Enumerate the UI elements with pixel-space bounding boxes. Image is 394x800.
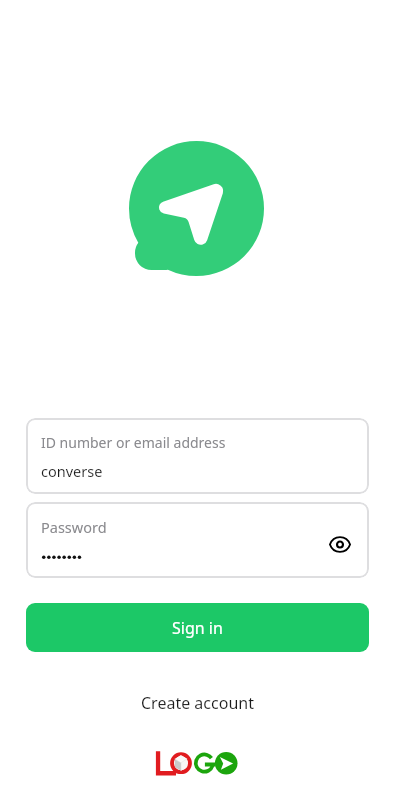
staticText: Sign in xyxy=(172,617,223,639)
button[interactable]: Sign in xyxy=(26,603,369,652)
staticText: ID number or email address xyxy=(41,433,226,452)
button[interactable]: Password xyxy=(26,502,369,578)
staticText: Password xyxy=(41,517,107,537)
staticText: converse xyxy=(41,461,103,481)
button[interactable]: Show password xyxy=(322,526,358,562)
button[interactable]: ID number or email address xyxy=(26,418,369,494)
staticText: Create account xyxy=(141,692,254,714)
button[interactable]: Create account xyxy=(137,688,257,718)
